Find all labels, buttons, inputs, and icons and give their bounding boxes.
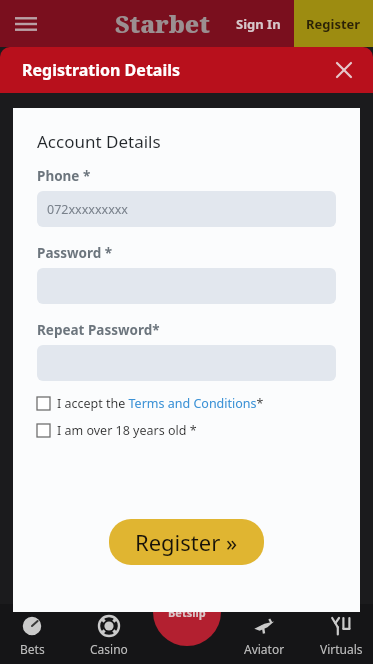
staticText: Virtuals: [320, 641, 363, 657]
button[interactable]: Casino: [77, 615, 141, 664]
button[interactable]: Bets: [0, 615, 64, 664]
button[interactable]: Register: [294, 0, 373, 47]
button[interactable]: I am over 18 years old *: [37, 422, 336, 439]
staticText: Password *: [37, 244, 113, 262]
staticText: Registration Details: [22, 59, 181, 81]
staticText: Repeat Password*: [37, 321, 160, 339]
staticText: I am over 18 years old *: [57, 422, 197, 439]
staticText: Betslip: [168, 605, 206, 620]
button[interactable]: Betslip: [153, 578, 221, 646]
staticText: Sign In: [236, 15, 281, 33]
button[interactable]: Sign In: [223, 0, 294, 47]
staticText: Account Details: [37, 130, 161, 153]
staticText: Phone *: [37, 167, 91, 185]
staticText: Register »: [135, 527, 238, 557]
button[interactable]: Close: [327, 53, 361, 87]
button[interactable]: Aviator: [232, 615, 296, 664]
staticText: 072xxxxxxxxx: [47, 201, 128, 218]
staticText: Casino: [90, 641, 128, 657]
button[interactable]: 072xxxxxxxxx: [37, 191, 336, 227]
staticText: I accept the Terms and Conditions*: [57, 395, 264, 412]
button[interactable]: Register »: [109, 519, 264, 565]
button[interactable]: Virtuals: [309, 615, 373, 664]
button[interactable]: I accept the Terms and Conditions*: [37, 395, 336, 412]
staticText: Starbet: [115, 7, 210, 40]
staticText: Bets: [20, 641, 45, 657]
button[interactable]: Menu: [6, 4, 46, 44]
staticText: Register: [306, 15, 361, 33]
staticText: Aviator: [244, 641, 285, 657]
